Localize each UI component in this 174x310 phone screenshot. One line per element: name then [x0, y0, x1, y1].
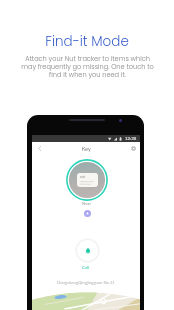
button[interactable]: Back — [33, 142, 46, 155]
staticText: 12:38 — [125, 136, 137, 141]
staticText: Call — [82, 265, 90, 270]
staticText: Near — [82, 201, 91, 206]
staticText: Find-it Mode — [45, 32, 129, 51]
staticText: Key — [82, 146, 91, 152]
staticText: Attach your Nut tracker to items which m… — [21, 54, 154, 79]
button[interactable]: Settings — [127, 142, 140, 155]
staticText: nut — [80, 175, 85, 179]
button[interactable] — [75, 238, 100, 263]
staticText: DongchengQingjingguan No.11 — [57, 280, 115, 285]
button[interactable]: Alarm — [84, 210, 91, 217]
